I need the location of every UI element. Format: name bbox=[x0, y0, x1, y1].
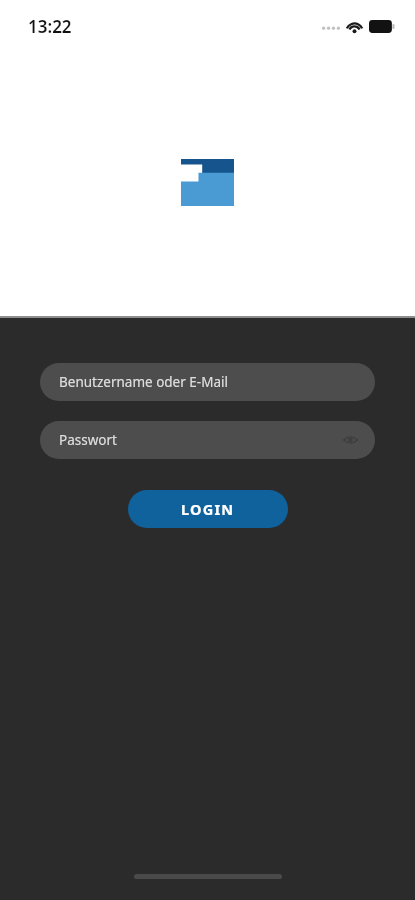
button[interactable]: LOGIN bbox=[128, 490, 288, 528]
staticText: Benutzername oder E-Mail bbox=[59, 373, 228, 391]
staticText: Passwort bbox=[59, 431, 117, 449]
staticText: 13:22 bbox=[28, 15, 72, 38]
button[interactable]: Benutzername oder E-Mail bbox=[40, 363, 375, 401]
staticText: LOGIN bbox=[181, 499, 235, 519]
button[interactable]: Passwort bbox=[40, 421, 375, 459]
button[interactable]: Passwort anzeigen bbox=[339, 429, 361, 451]
